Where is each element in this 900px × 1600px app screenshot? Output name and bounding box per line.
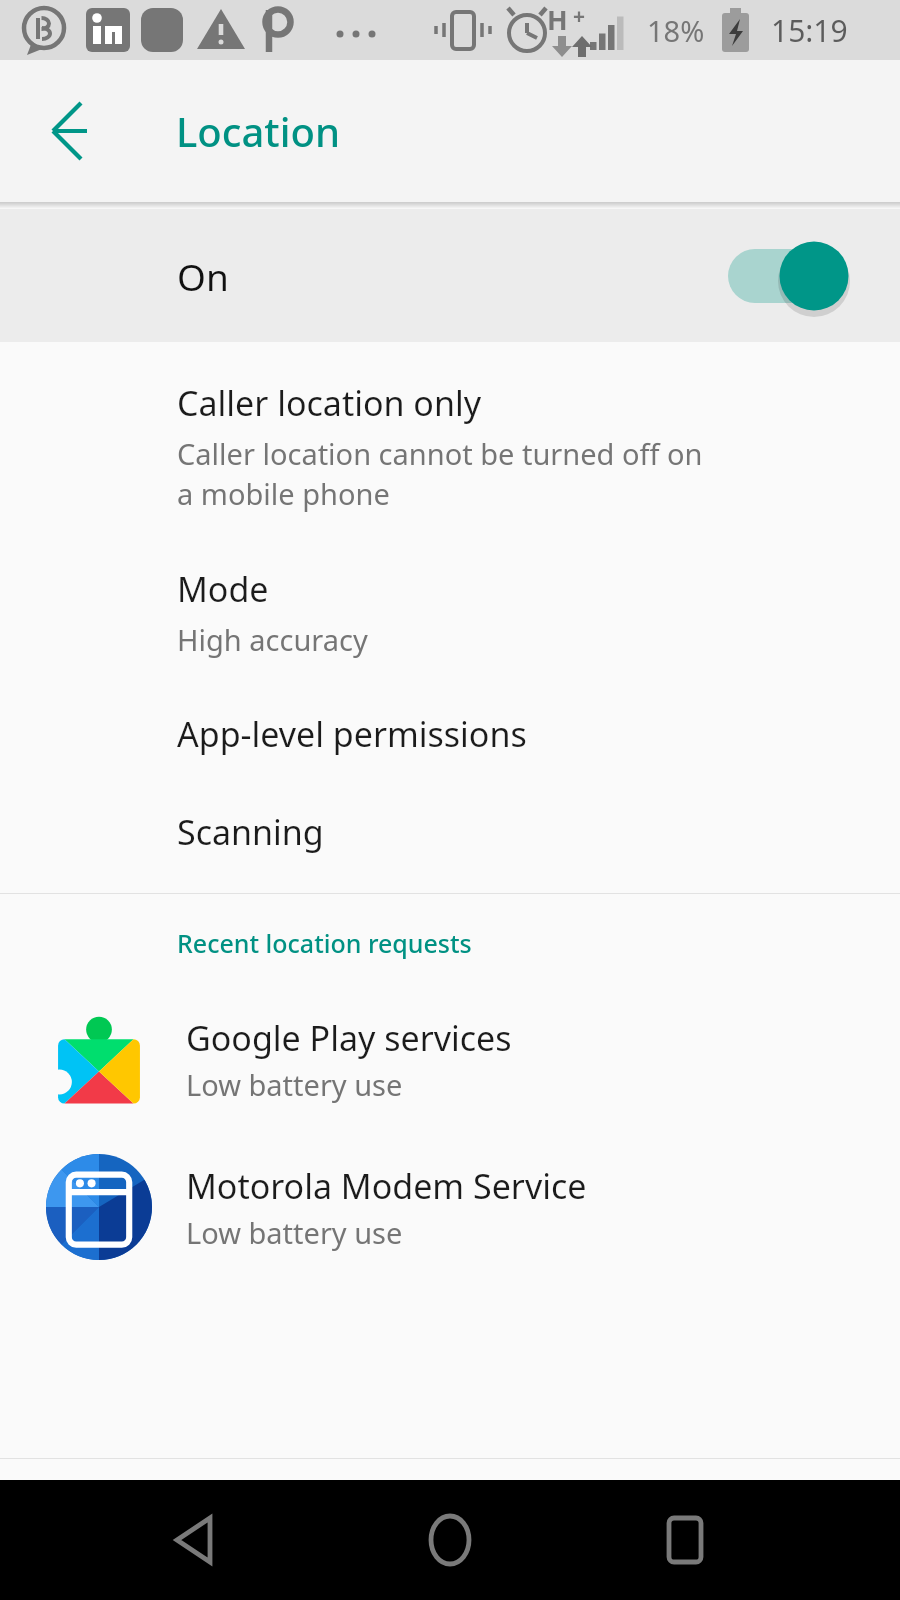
- button[interactable]: Back: [20, 83, 116, 179]
- staticText: Recent location requests: [177, 926, 472, 960]
- button[interactable]: Scanning: [0, 783, 900, 881]
- button[interactable]: Back: [140, 1485, 250, 1595]
- button[interactable]: App-level permissions: [0, 685, 900, 783]
- button[interactable]: Home: [395, 1485, 505, 1595]
- staticText: Caller location only: [177, 380, 482, 426]
- staticText: Mode: [177, 566, 269, 612]
- button[interactable]: Motorola Modem Service: [0, 1144, 900, 1270]
- staticText: Low battery use: [186, 1065, 403, 1104]
- staticText: +: [573, 2, 586, 31]
- button[interactable]: Recent apps: [630, 1485, 740, 1595]
- staticText: App-level permissions: [177, 711, 527, 757]
- staticText: 18%: [647, 11, 705, 50]
- button[interactable]: On: [0, 209, 900, 342]
- staticText: Google Play services: [186, 1015, 512, 1061]
- staticText: On: [177, 251, 229, 301]
- staticText: H: [547, 1, 568, 38]
- staticText: Motorola Modem Service: [186, 1163, 587, 1209]
- staticText: 15:19: [771, 10, 848, 51]
- staticText: High accuracy: [177, 620, 368, 659]
- button[interactable]: Mode: [0, 540, 900, 685]
- staticText: Low battery use: [186, 1213, 403, 1252]
- staticText: Location: [176, 104, 340, 158]
- button[interactable]: Google Play services: [0, 996, 900, 1122]
- button[interactable]: Caller location only: [0, 354, 900, 540]
- staticText: Scanning: [177, 809, 324, 855]
- staticText: Caller location cannot be turned off on …: [177, 434, 703, 514]
